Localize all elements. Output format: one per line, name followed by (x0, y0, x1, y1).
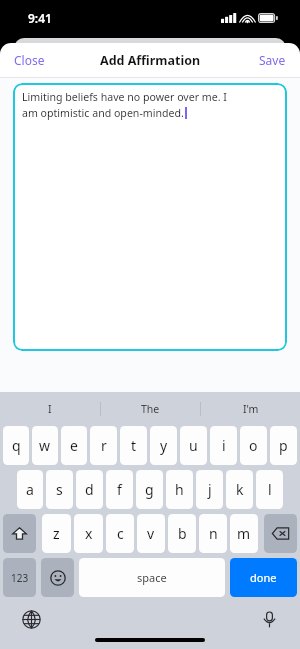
staticText: c (117, 524, 124, 543)
button[interactable]: b (168, 514, 196, 553)
button[interactable]: Save (245, 46, 300, 74)
staticText: am optimistic and open-minded. (22, 106, 184, 120)
button[interactable]: i (210, 426, 237, 465)
button[interactable]: z (42, 514, 71, 553)
staticText: d (85, 480, 94, 499)
staticText: Close (14, 52, 45, 68)
button[interactable]: o (240, 426, 267, 465)
button[interactable]: j (196, 470, 223, 509)
staticText: n (209, 524, 218, 543)
staticText: i (222, 436, 226, 455)
staticText: The (141, 402, 160, 416)
button[interactable]: s (46, 470, 73, 509)
button[interactable]: Shift (3, 514, 36, 553)
staticText: done (250, 570, 277, 585)
staticText: f (117, 480, 122, 499)
button[interactable]: a (17, 470, 43, 509)
button[interactable]: v (137, 514, 165, 553)
staticText: h (175, 480, 184, 499)
button[interactable]: e (61, 426, 87, 465)
button[interactable]: d (76, 470, 103, 509)
button[interactable]: Dictation (256, 606, 282, 632)
staticText: x (85, 524, 93, 543)
staticText: o (249, 436, 258, 455)
button[interactable]: t (120, 426, 147, 465)
button[interactable]: q (3, 426, 29, 465)
staticText: t (131, 436, 137, 455)
staticText: l (268, 480, 272, 499)
button[interactable]: I (0, 392, 100, 425)
button[interactable]: n (199, 514, 227, 553)
staticText: v (147, 524, 155, 543)
staticText: m (237, 524, 251, 543)
staticText: I'm (243, 402, 259, 416)
staticText: b (178, 524, 187, 543)
button[interactable]: Change keyboard (18, 606, 44, 632)
staticText: Limiting beliefs have no power over me. … (22, 90, 227, 104)
staticText: e (70, 436, 78, 455)
button[interactable]: x (74, 514, 103, 553)
button[interactable]: y (150, 426, 177, 465)
button[interactable]: p (270, 426, 297, 465)
staticText: p (279, 436, 288, 455)
staticText: q (12, 436, 21, 455)
staticText: w (39, 436, 51, 455)
button[interactable]: done (230, 558, 297, 597)
button[interactable]: 123 (3, 558, 36, 597)
staticText: Add Affirmation (100, 52, 201, 69)
button[interactable]: w (32, 426, 58, 465)
button[interactable]: Close (0, 46, 59, 74)
button[interactable]: g (136, 470, 163, 509)
staticText: space (137, 570, 167, 585)
button[interactable]: h (166, 470, 193, 509)
staticText: a (26, 480, 34, 499)
button[interactable]: m (230, 514, 258, 553)
staticText: z (53, 524, 60, 543)
button[interactable]: l (256, 470, 283, 509)
button[interactable]: I'm (201, 392, 300, 425)
staticText: s (56, 480, 63, 499)
button[interactable]: The (101, 392, 200, 425)
staticText: r (101, 436, 107, 455)
button[interactable]: r (90, 426, 117, 465)
staticText: k (236, 480, 244, 499)
staticText: j (208, 480, 212, 499)
button[interactable]: Emoji (41, 558, 74, 597)
staticText: u (189, 436, 198, 455)
staticText: Save (259, 52, 286, 68)
staticText: 9:41 (28, 10, 52, 26)
staticText: y (160, 436, 168, 455)
button[interactable]: f (106, 470, 133, 509)
staticText: I (48, 402, 52, 416)
button[interactable]: k (226, 470, 253, 509)
staticText: 123 (11, 571, 29, 585)
button[interactable]: space (79, 558, 225, 597)
button[interactable]: c (106, 514, 134, 553)
button[interactable]: Backspace (264, 514, 297, 553)
button[interactable]: u (180, 426, 207, 465)
staticText: g (145, 480, 154, 499)
button[interactable]: Limiting beliefs have no power over me. … (13, 83, 287, 351)
